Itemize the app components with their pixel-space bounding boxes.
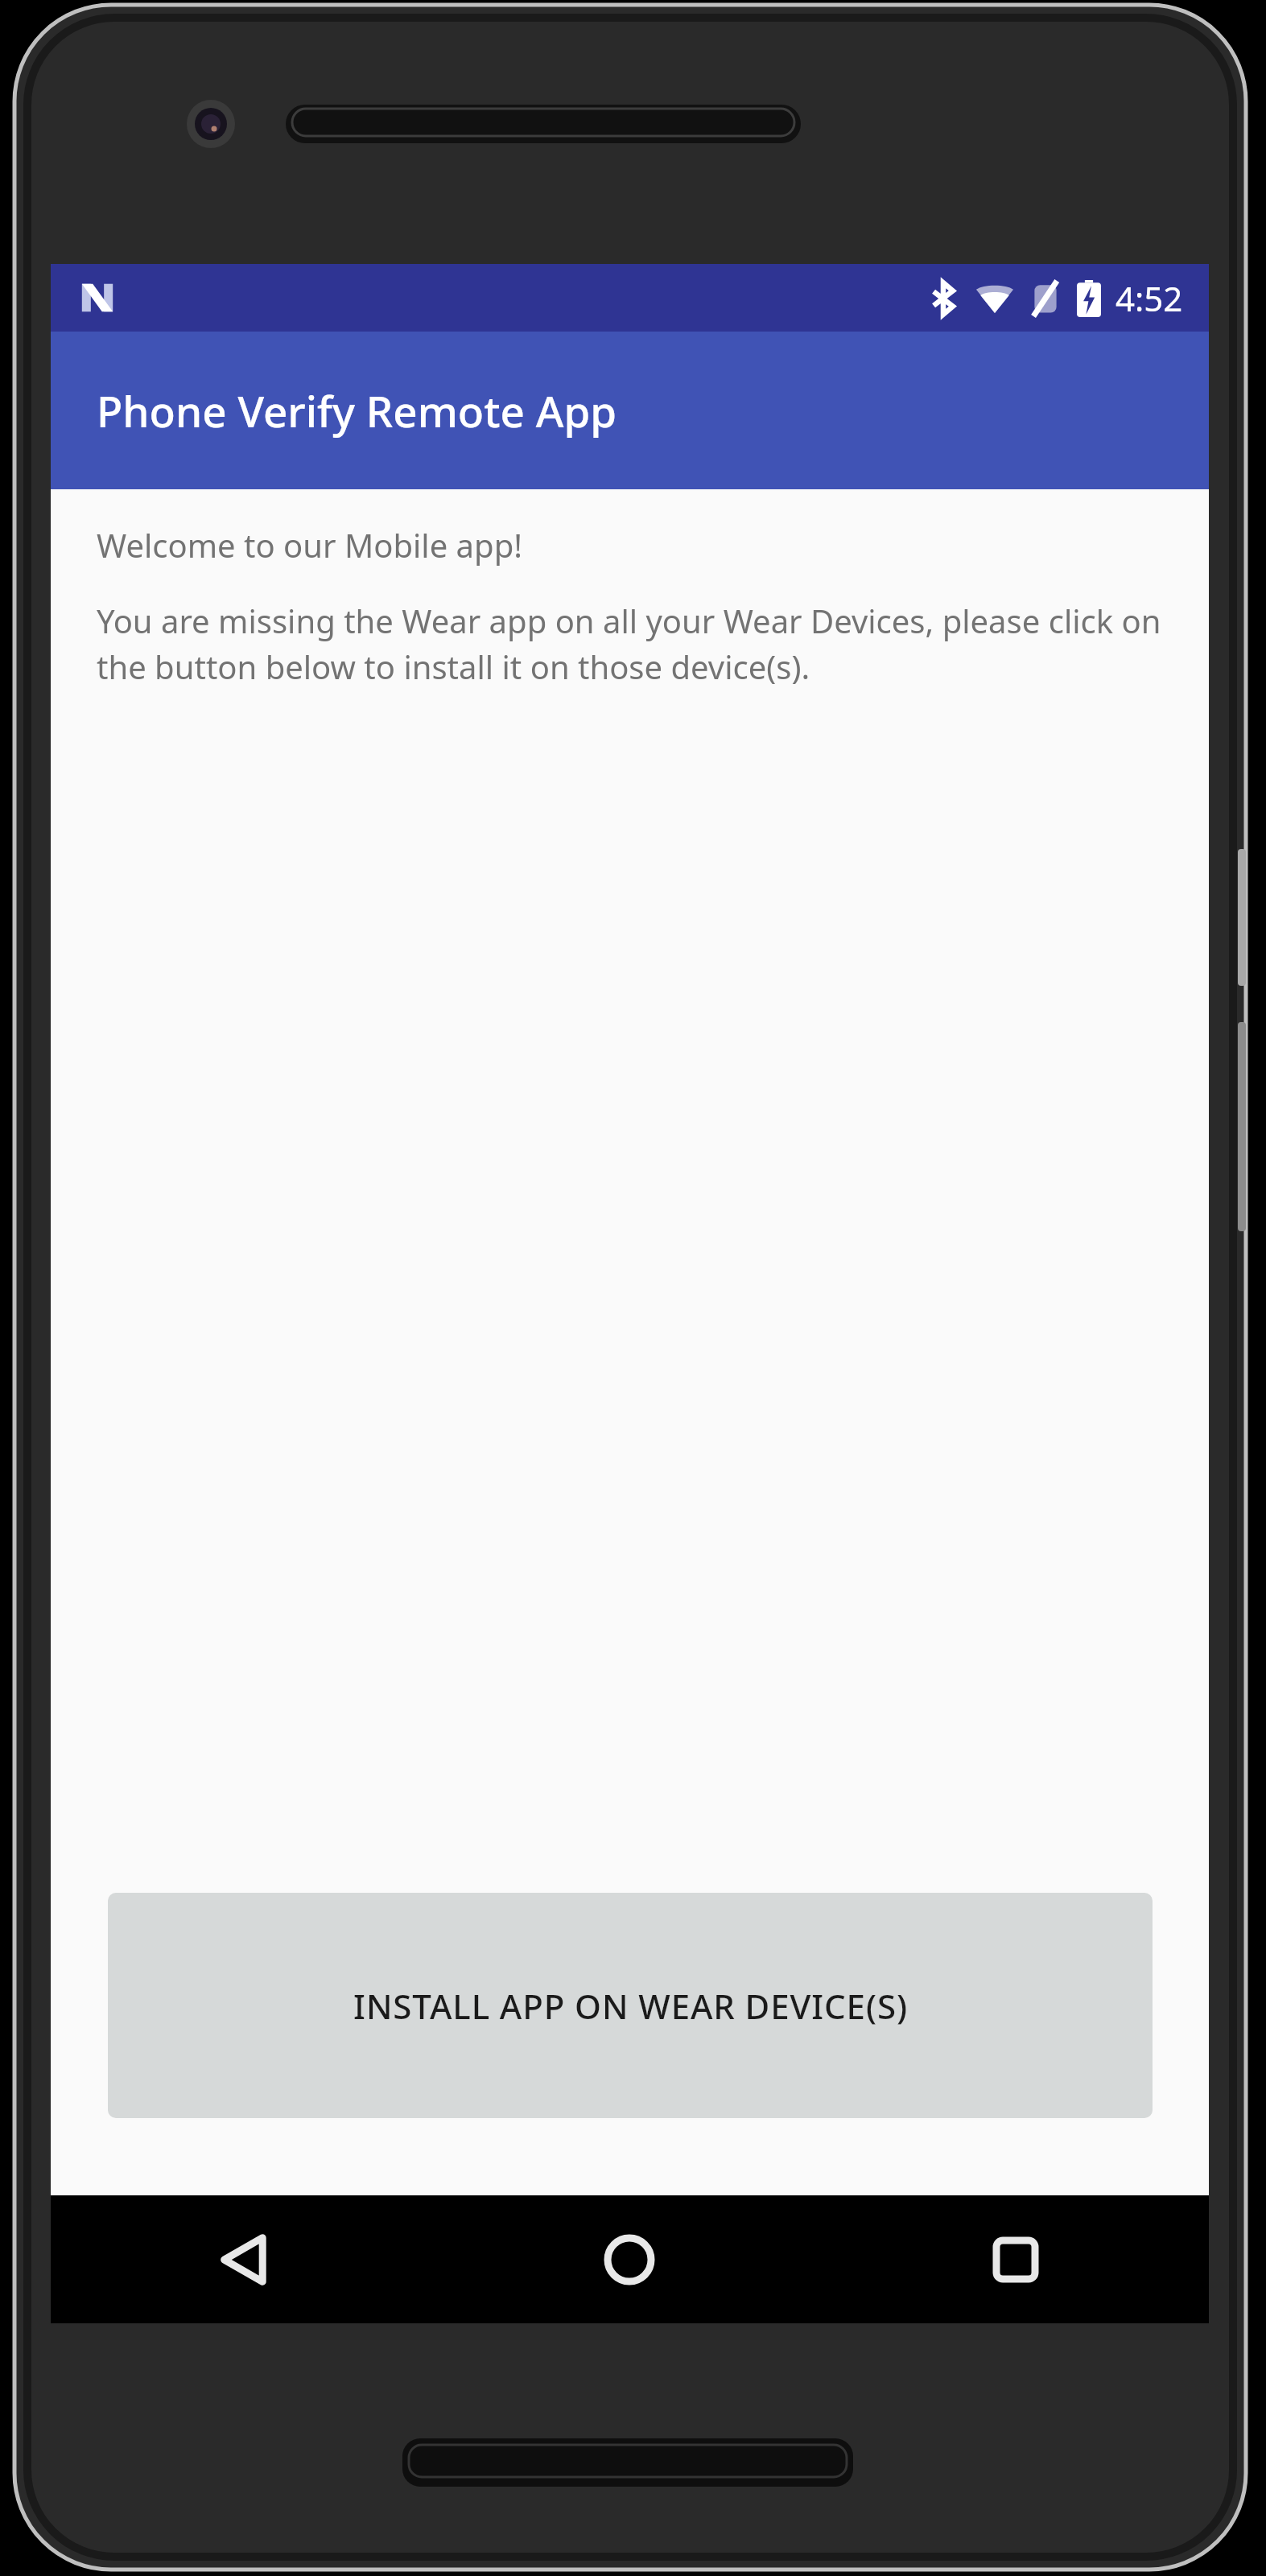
- button[interactable]: Back: [51, 2195, 436, 2323]
- button[interactable]: Recent apps: [823, 2195, 1209, 2323]
- button[interactable]: Home: [436, 2195, 823, 2323]
- staticText: Welcome to our Mobile app!: [97, 523, 522, 567]
- staticText: 4:52: [1115, 275, 1183, 321]
- staticText: INSTALL APP ON WEAR DEVICE(S): [353, 1983, 908, 2029]
- staticText: Phone Verify Remote App: [97, 381, 617, 439]
- button[interactable]: INSTALL APP ON WEAR DEVICE(S): [108, 1893, 1153, 2118]
- staticText: You are missing the Wear app on all your…: [97, 599, 1177, 688]
